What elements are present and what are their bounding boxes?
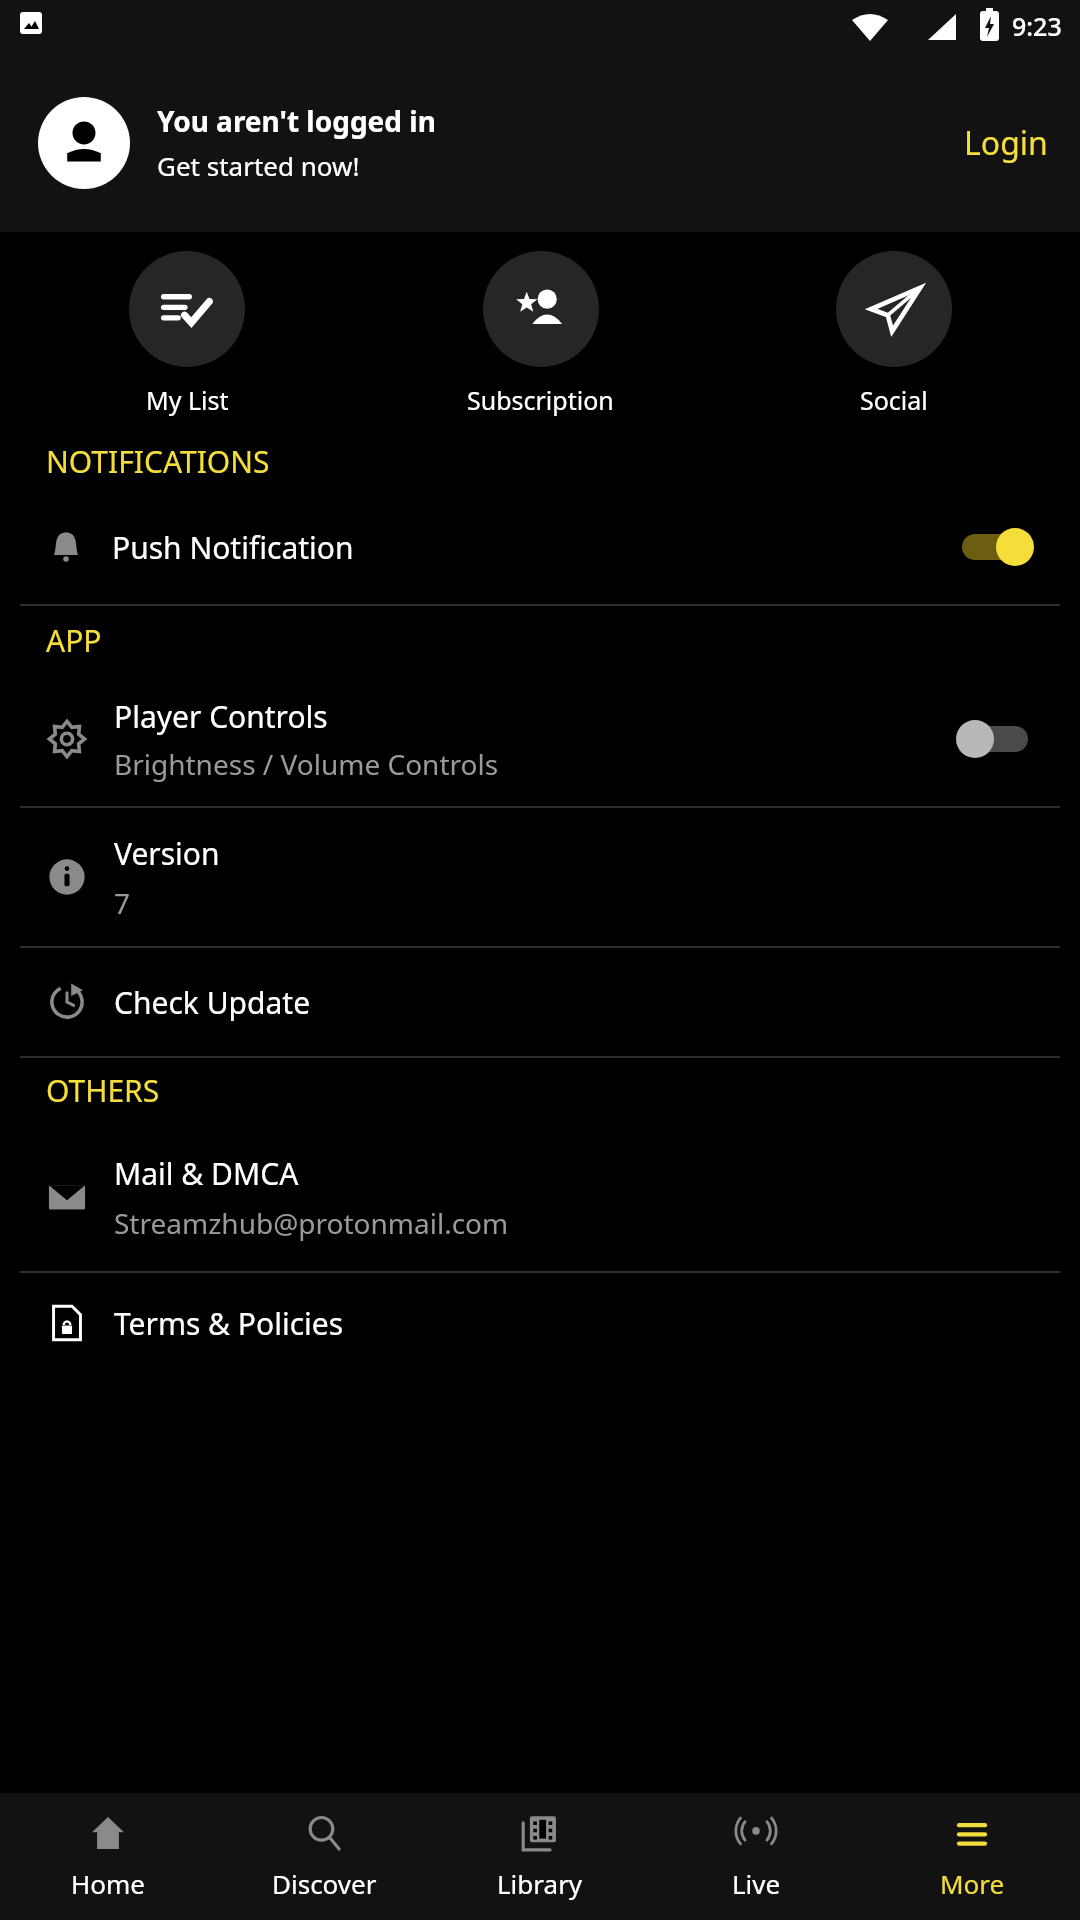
staticText: APP [46, 620, 102, 661]
button[interactable]: Discover [216, 1793, 432, 1920]
button[interactable]: Toggle on [956, 522, 1034, 572]
staticText: Subscription [467, 383, 614, 417]
staticText: Brightness / Volume Controls [114, 745, 499, 783]
button[interactable]: More [864, 1793, 1080, 1920]
staticText: Home [71, 1866, 145, 1901]
staticText: My List [146, 383, 229, 417]
button[interactable]: Social [717, 245, 1070, 423]
staticText: Get started now! [157, 148, 360, 183]
staticText: Mail & DMCA [114, 1153, 299, 1194]
button[interactable]: Terms & Policies [0, 1273, 1080, 1373]
button[interactable]: Push Notification [0, 504, 1080, 590]
staticText: Streamzhub@protonmail.com [114, 1204, 509, 1242]
staticText: 7 [114, 884, 131, 922]
staticText: Terms & Policies [114, 1303, 1034, 1344]
button[interactable]: My List [10, 245, 364, 423]
button[interactable]: Library [432, 1793, 648, 1920]
button[interactable]: Home [0, 1793, 216, 1920]
staticText: Player Controls [114, 696, 328, 737]
button[interactable]: Live [648, 1793, 864, 1920]
staticText: Version [114, 833, 220, 874]
button[interactable]: Version [0, 808, 1080, 946]
button[interactable]: Player Controls [0, 683, 1080, 795]
staticText: Login [964, 121, 1048, 165]
staticText: Push Notification [112, 527, 956, 568]
button[interactable]: Check Update [0, 948, 1080, 1056]
staticText: NOTIFICATIONS [46, 441, 270, 482]
button[interactable]: Login [958, 113, 1054, 173]
staticText: Discover [272, 1866, 377, 1901]
staticText: Live [732, 1866, 781, 1901]
button[interactable]: Mail & DMCA [0, 1133, 1080, 1261]
staticText: Social [860, 383, 928, 417]
staticText: You aren't logged in [157, 102, 436, 140]
button[interactable]: Subscription [364, 245, 717, 423]
staticText: Check Update [114, 982, 1034, 1023]
button[interactable]: Toggle off [956, 714, 1034, 764]
staticText: Library [497, 1866, 583, 1901]
staticText: 9:23 [1012, 9, 1062, 43]
staticText: OTHERS [46, 1070, 160, 1111]
staticText: More [940, 1866, 1005, 1901]
